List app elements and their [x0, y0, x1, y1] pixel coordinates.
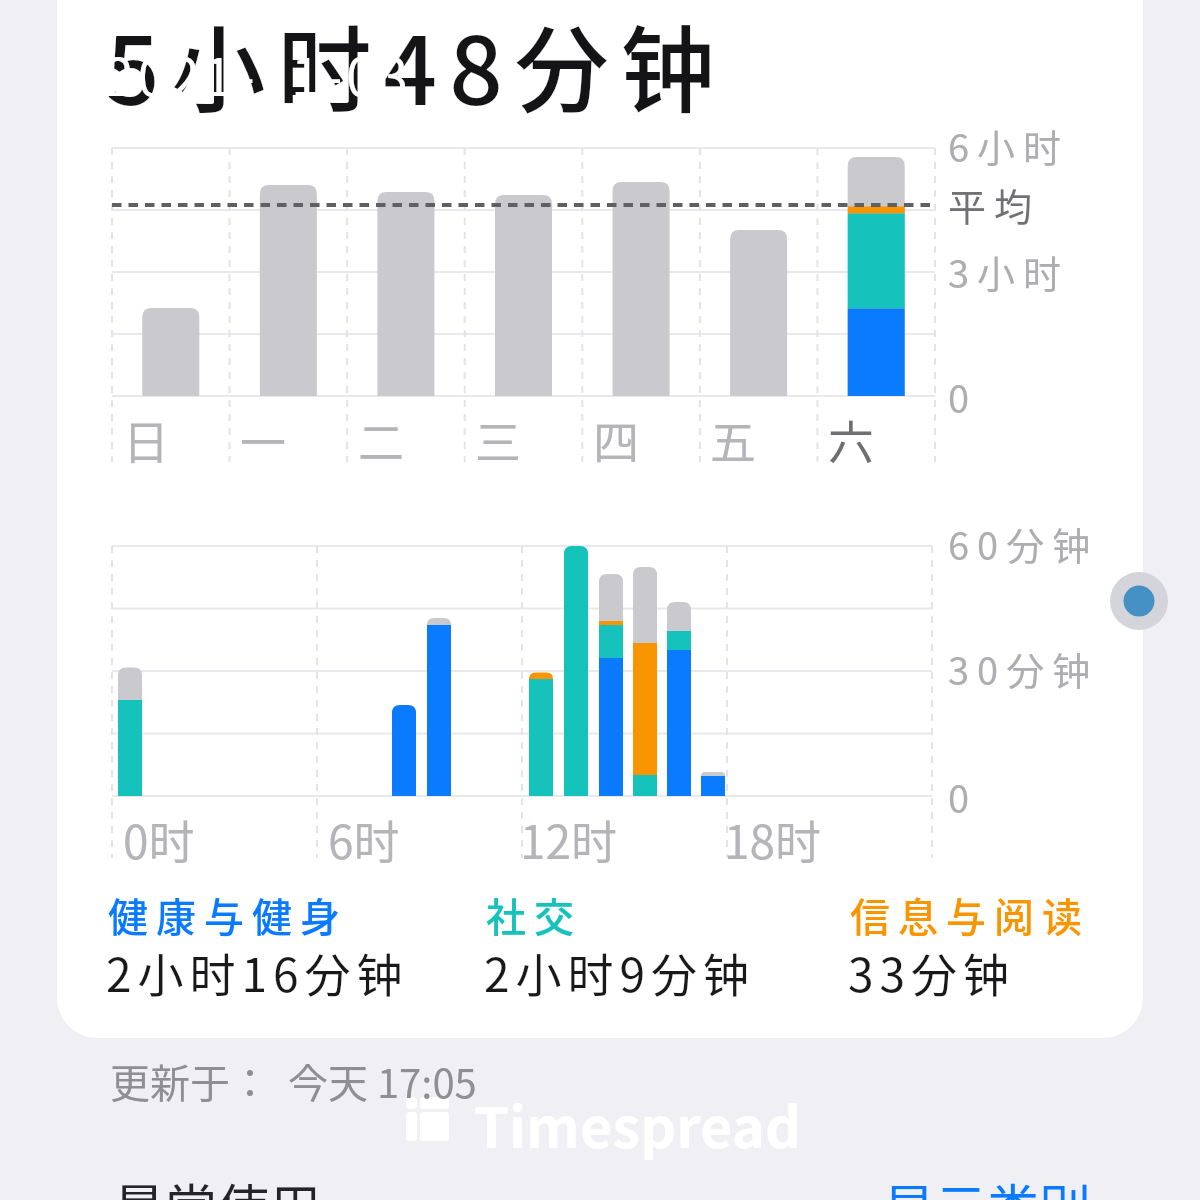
staticText: 33分钟 — [848, 939, 1016, 1006]
staticText: 三 — [475, 406, 521, 473]
staticText: 30分钟 — [948, 641, 1099, 696]
staticText: 一 — [240, 406, 286, 473]
staticText: 0 — [948, 769, 978, 824]
staticText: 日 — [123, 406, 169, 473]
staticText: 0 — [948, 369, 978, 424]
staticText: 18时 — [724, 806, 822, 873]
button[interactable]: 显示类别 — [883, 1168, 1092, 1200]
staticText: 6小时 — [948, 118, 1070, 173]
staticText: 0时 — [123, 806, 195, 873]
staticText: 5小时48分钟 — [106, 0, 727, 132]
button[interactable]: 社交 — [486, 886, 582, 944]
staticText: 2小时9分钟 — [484, 939, 756, 1006]
staticText: 2021-11-03 — [105, 36, 412, 111]
staticText: 六 — [828, 406, 874, 473]
staticText: 更新于： 今天 17:05 — [110, 1052, 477, 1110]
staticText: 四 — [593, 406, 639, 473]
staticText: 3小时 — [948, 244, 1070, 299]
staticText: 2小时16分钟 — [106, 939, 409, 1006]
staticText: 6时 — [328, 806, 400, 873]
staticText: 60分钟 — [948, 516, 1099, 571]
staticText: 12时 — [520, 806, 618, 873]
staticText: Timespread — [474, 1083, 801, 1164]
staticText: 五 — [710, 406, 756, 473]
staticText: 二 — [358, 406, 404, 473]
button[interactable]: 最常使用 — [113, 1168, 322, 1200]
button[interactable]: 健康与健身 — [108, 886, 348, 944]
button[interactable]: 信息与阅读 — [850, 886, 1090, 944]
staticText: 平均 — [948, 177, 1041, 232]
